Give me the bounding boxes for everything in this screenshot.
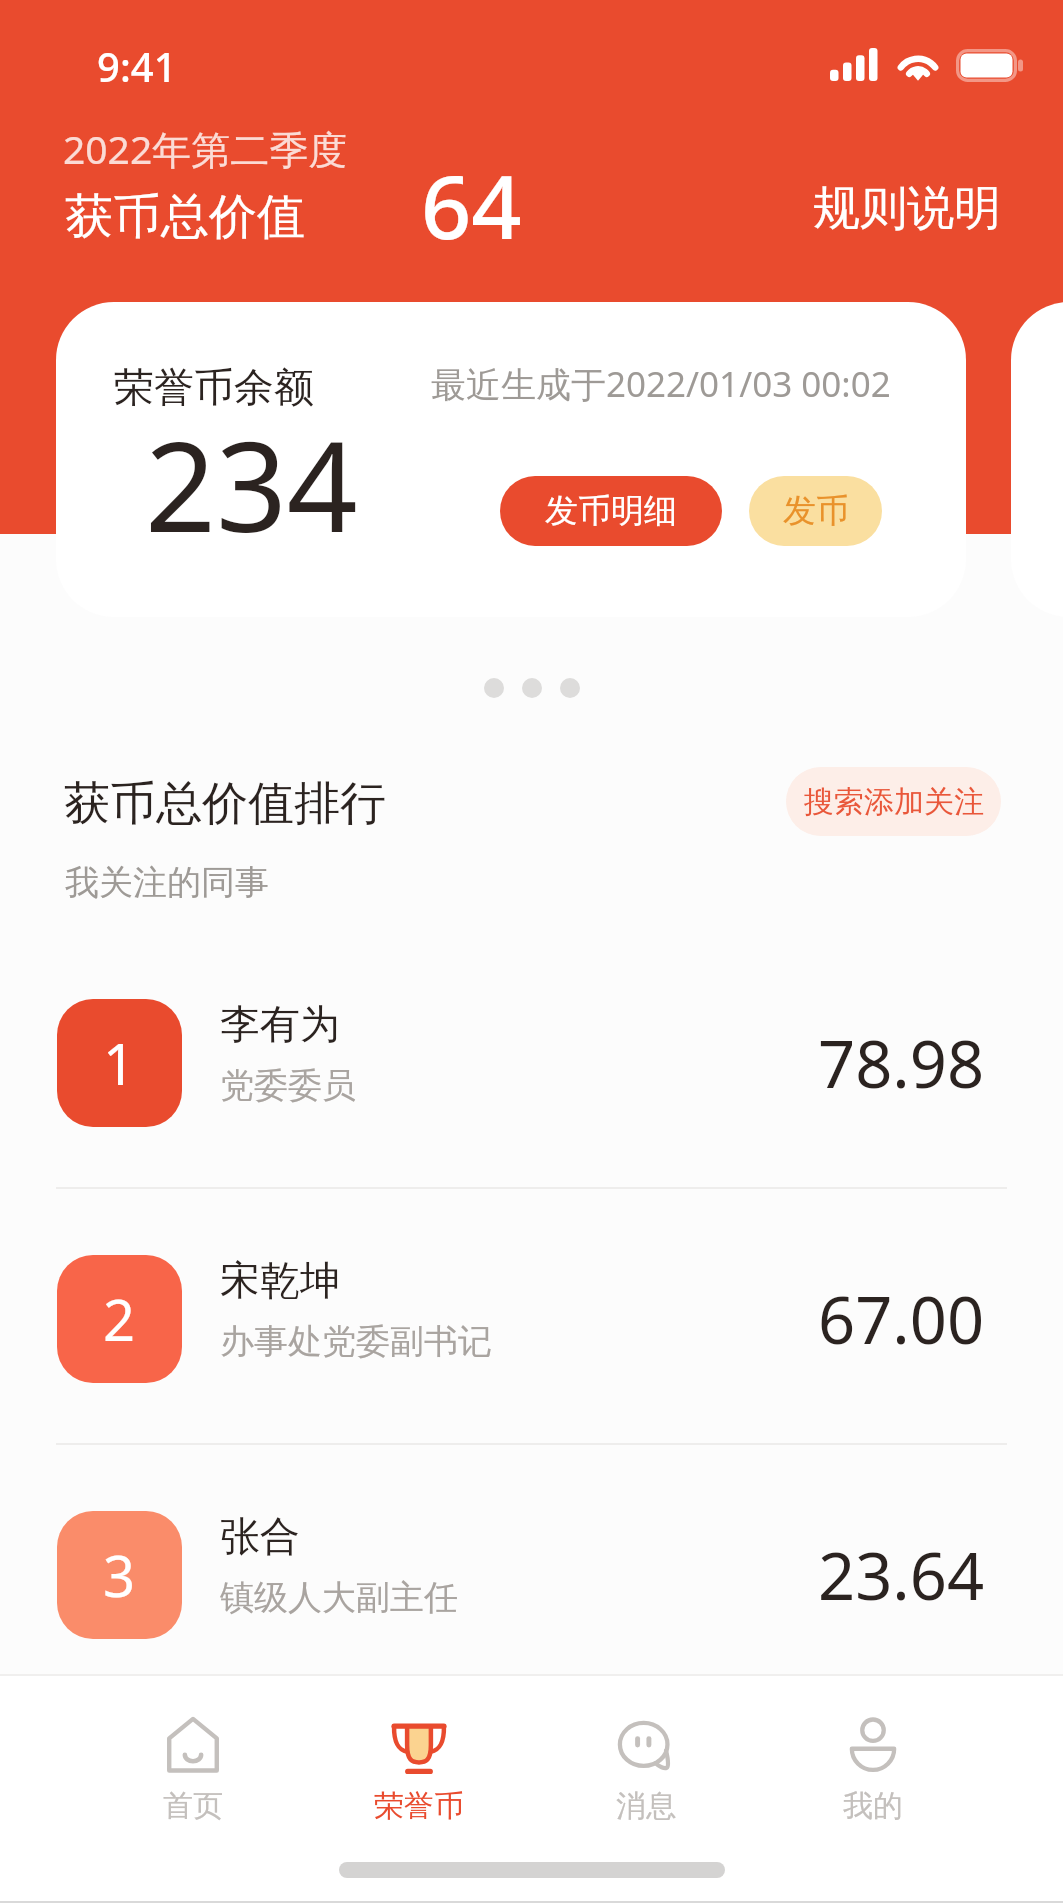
button[interactable]: 1 <box>0 999 1063 1127</box>
button[interactable]: 荣誉币余额 <box>56 302 966 617</box>
button[interactable]: Profile <box>798 1716 948 1851</box>
staticText: 荣誉币余额 <box>114 362 314 412</box>
button[interactable]: 发币 <box>749 476 882 546</box>
staticText: 张合 <box>220 1511 300 1561</box>
staticText: 67.00 <box>818 1275 985 1364</box>
staticText: 宋乾坤 <box>220 1255 340 1305</box>
staticText: 最近生成于2022/01/03 00:02 <box>431 360 891 408</box>
button[interactable]: Home <box>118 1716 268 1851</box>
staticText: 荣誉币 <box>374 1787 464 1825</box>
staticText: 23.64 <box>818 1531 985 1620</box>
staticText: 3 <box>103 1537 136 1613</box>
staticText: 首页 <box>163 1787 223 1825</box>
staticText: 搜索添加关注 <box>804 783 984 821</box>
staticText: 9:41 <box>97 39 177 93</box>
staticText: 我关注的同事 <box>65 861 269 904</box>
staticText: 发币 <box>783 490 849 532</box>
staticText: 获币总价值排行 <box>64 775 386 833</box>
staticText: 消息 <box>616 1787 676 1825</box>
staticText: 办事处党委副书记 <box>220 1320 492 1363</box>
staticText: 规则说明 <box>813 179 1001 238</box>
other: Honor coins <box>390 1716 448 1774</box>
staticText: 2 <box>103 1281 136 1357</box>
button[interactable]: Honor coins <box>344 1716 494 1851</box>
staticText: 李有为 <box>220 999 340 1049</box>
staticText: 1 <box>103 1025 136 1101</box>
staticText: 镇级人大副主任 <box>220 1576 458 1619</box>
staticText: 党委委员 <box>220 1064 356 1107</box>
other: Home <box>164 1716 222 1774</box>
staticText: 78.98 <box>818 1019 985 1108</box>
button[interactable]: 2 <box>0 1255 1063 1383</box>
staticText: 发币明细 <box>545 490 677 532</box>
button[interactable]: 规则说明 <box>793 159 1021 258</box>
staticText: 64 <box>421 145 522 265</box>
staticText: 2022年第二季度 <box>63 122 348 175</box>
other: Messages <box>617 1716 675 1774</box>
button[interactable]: 搜索添加关注 <box>786 767 1001 836</box>
button[interactable]: 3 <box>0 1511 1063 1639</box>
button[interactable]: 发币明细 <box>500 476 722 546</box>
staticText: 获币总价值 <box>65 187 305 247</box>
staticText: 234 <box>145 399 358 568</box>
other: Profile <box>844 1716 902 1774</box>
staticText: 我的 <box>843 1787 903 1825</box>
button[interactable]: Messages <box>571 1716 721 1851</box>
